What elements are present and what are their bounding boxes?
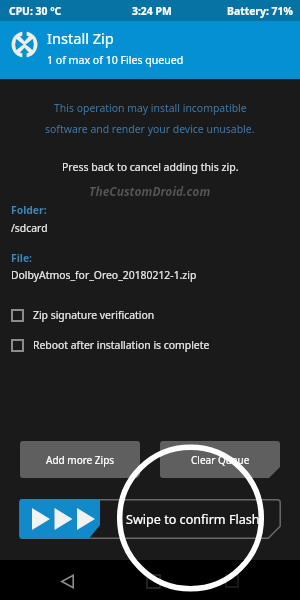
staticText: Clear Queue xyxy=(191,453,250,467)
button[interactable]: Clear Queue xyxy=(160,441,280,478)
staticText: TheCustomDroid.com xyxy=(89,183,211,199)
button[interactable]: Swipe to confirm Flash xyxy=(19,499,281,539)
staticText: Reboot after installation is complete xyxy=(33,338,210,352)
staticText: This operation may install incompatible xyxy=(54,101,247,115)
staticText: 1 of max of 10 Files queued xyxy=(47,53,184,67)
button[interactable]: Add more Zips xyxy=(20,441,140,478)
staticText: File: xyxy=(11,251,33,265)
button[interactable]: Recents xyxy=(218,567,246,595)
button[interactable]: Home xyxy=(139,567,167,595)
button[interactable]: Zip signature verification xyxy=(0,303,300,327)
staticText: 3:24 PM xyxy=(132,4,172,18)
button[interactable]: Back xyxy=(53,567,81,595)
staticText: software and render your device unusable… xyxy=(45,122,255,136)
button[interactable]: Reboot after installation is complete xyxy=(0,333,300,357)
staticText: Folder: xyxy=(11,203,47,217)
staticText: Add more Zips xyxy=(46,453,115,467)
staticText: DolbyAtmos_for_Oreo_20180212-1.zip xyxy=(11,268,197,282)
staticText: /sdcard xyxy=(11,221,48,235)
staticText: Swipe to confirm Flash xyxy=(126,511,260,528)
staticText: Battery: 71% xyxy=(227,4,293,18)
button[interactable]: Install Zip xyxy=(0,21,300,79)
staticText: CPU: 30 °C xyxy=(9,4,62,18)
staticText: Zip signature verification xyxy=(33,308,155,322)
staticText: Install Zip xyxy=(47,28,114,48)
staticText: Press back to cancel adding this zip. xyxy=(62,160,239,174)
